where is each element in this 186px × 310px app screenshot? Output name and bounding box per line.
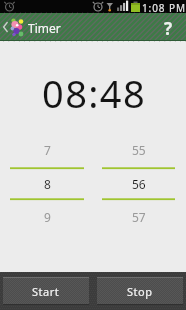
staticText: 9 (44, 209, 51, 225)
staticText: Start (32, 284, 60, 299)
staticText: 1:08 PM (142, 1, 186, 14)
staticText: Stop (127, 284, 153, 299)
staticText: 8 (44, 176, 51, 192)
staticText: 57 (132, 209, 146, 225)
button[interactable] (10, 169, 84, 199)
button[interactable] (0, 13, 30, 41)
button[interactable]: Stop (97, 277, 183, 305)
staticText: ? (164, 17, 173, 40)
staticText: 56 (132, 176, 146, 192)
button[interactable]: Start (3, 277, 89, 305)
button[interactable]: ? (152, 13, 185, 41)
staticText: Timer (28, 20, 61, 36)
button[interactable] (102, 169, 175, 199)
staticText: 08:48 (42, 67, 147, 119)
staticText: 7 (44, 142, 51, 158)
staticText: 55 (132, 142, 146, 158)
